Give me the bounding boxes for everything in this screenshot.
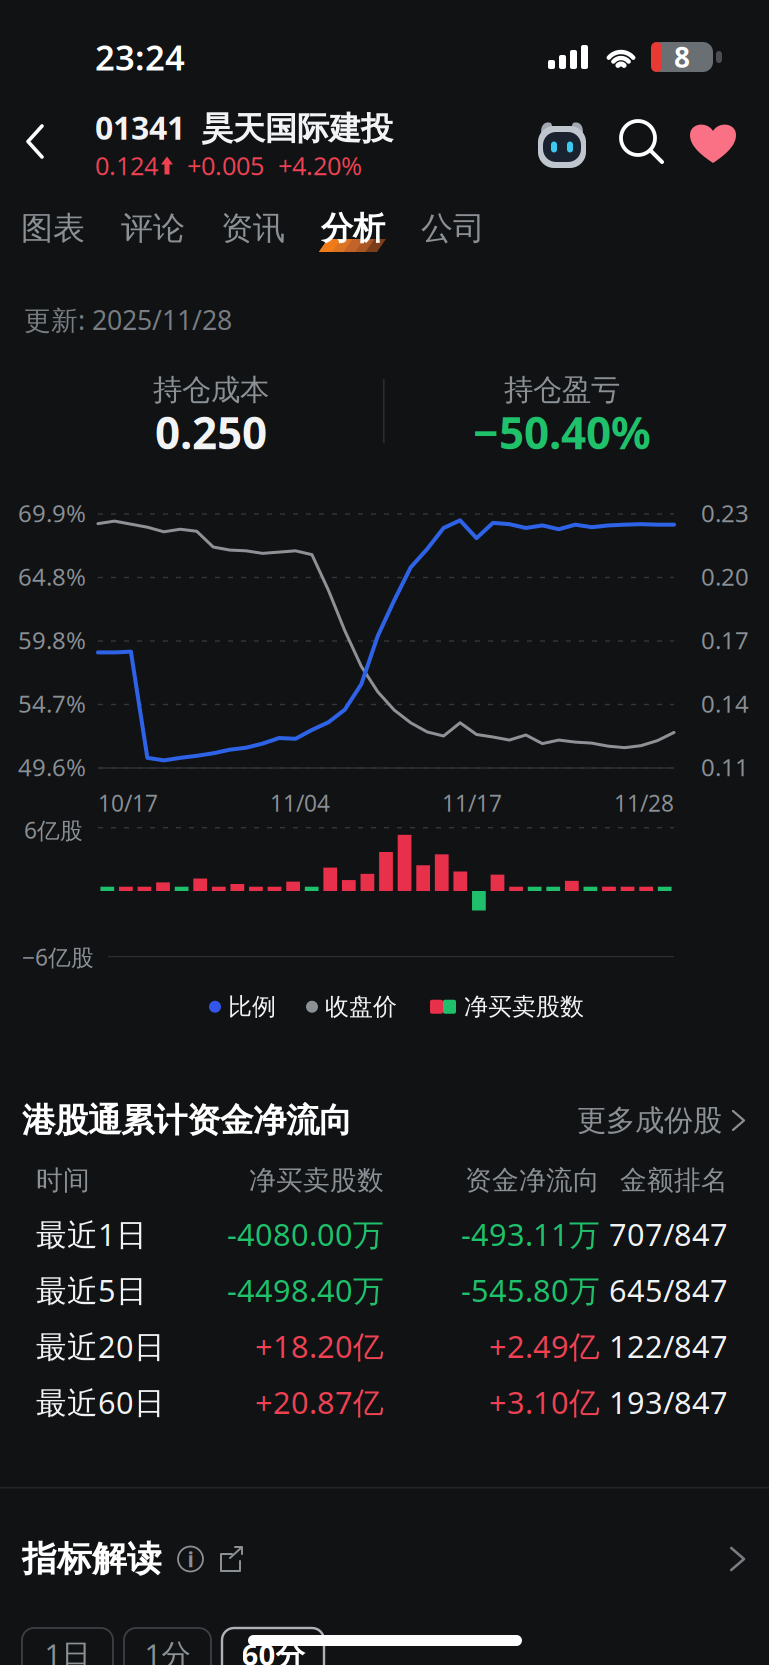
button[interactable]: 60分 [222, 1628, 324, 1665]
button[interactable]: AI assistant [535, 118, 589, 168]
staticText: 49.6% [18, 751, 86, 783]
staticText: 最近60日 [36, 1382, 165, 1422]
button[interactable]: 分析 [301, 204, 401, 256]
staticText: 64.8% [18, 560, 86, 592]
button[interactable]: Back [11, 112, 60, 171]
button[interactable]: 1日 [22, 1628, 113, 1665]
staticText: 指标解读 [22, 1538, 162, 1580]
staticText: -4080.00万 [227, 1214, 384, 1254]
button[interactable]: 更多成份股 [577, 1102, 747, 1138]
button[interactable]: 图表 [1, 204, 101, 256]
staticText: −6亿股 [22, 942, 94, 972]
staticText: 0.20 [701, 560, 749, 592]
staticText: i [187, 1545, 193, 1573]
staticText: 净买卖股数 [464, 992, 584, 1021]
staticText: +20.87亿 [255, 1382, 384, 1422]
staticText: 资讯 [221, 209, 285, 248]
staticText: 时间 [36, 1164, 90, 1197]
staticText: 0.250 [155, 403, 267, 461]
staticText: 收盘价 [325, 992, 397, 1021]
button[interactable]: Favourite [689, 120, 737, 164]
staticText: -545.80万 [461, 1270, 600, 1310]
staticText: 最近1日 [36, 1214, 147, 1254]
staticText: +0.005 +4.20% [173, 149, 362, 182]
staticText: 0.23 [701, 497, 749, 529]
staticText: -493.11万 [461, 1214, 600, 1254]
button[interactable]: Search [621, 121, 664, 164]
staticText: 0.124 [95, 149, 158, 182]
staticText: 23:24 [95, 34, 185, 80]
staticText: 比例 [228, 992, 276, 1021]
staticText: 707/847 [609, 1214, 728, 1254]
staticText: 1日 [44, 1634, 90, 1665]
staticText: −50.40% [473, 403, 651, 461]
staticText: 11/04 [270, 788, 330, 818]
staticText: 69.9% [18, 497, 86, 529]
staticText: +18.20亿 [255, 1326, 384, 1366]
staticText: 11/28 [614, 788, 674, 818]
staticText: 01341 昊天国际建投 [95, 106, 393, 148]
button[interactable]: 资讯 [201, 204, 301, 256]
button[interactable]: 1分 [124, 1628, 211, 1665]
staticText: +3.10亿 [489, 1382, 600, 1422]
staticText: 8 [674, 38, 690, 76]
button[interactable]: 指标解读 [0, 1516, 769, 1602]
staticText: 港股通累计资金净流向 [22, 1100, 352, 1141]
staticText: 59.8% [18, 624, 86, 656]
staticText: 公司 [421, 209, 485, 248]
staticText: +2.49亿 [489, 1326, 600, 1366]
staticText: 金额排名 [620, 1164, 728, 1197]
staticText: 11/17 [442, 788, 502, 818]
staticText: 持仓盈亏 [504, 372, 620, 408]
staticText: 0.11 [701, 751, 749, 783]
staticText: 10/17 [98, 788, 158, 818]
staticText: 122/847 [609, 1326, 728, 1366]
staticText: 645/847 [609, 1270, 728, 1310]
staticText: 分析 [321, 209, 385, 248]
staticText: 1分 [144, 1634, 190, 1665]
button[interactable]: 公司 [401, 204, 501, 256]
staticText: 更多成份股 [577, 1102, 722, 1138]
staticText: 54.7% [18, 687, 86, 719]
staticText: 最近5日 [36, 1270, 147, 1310]
staticText: 资金净流向 [465, 1164, 600, 1197]
staticText: 图表 [21, 209, 85, 248]
staticText: 0.17 [701, 624, 749, 656]
staticText: -4498.40万 [227, 1270, 384, 1310]
button[interactable]: 评论 [101, 204, 201, 256]
staticText: 净买卖股数 [249, 1164, 384, 1197]
staticText: 评论 [121, 209, 185, 248]
staticText: 193/847 [609, 1382, 728, 1422]
staticText: 持仓成本 [153, 372, 269, 408]
staticText: 6亿股 [24, 815, 83, 845]
staticText: 60分 [241, 1634, 304, 1665]
staticText: 最近20日 [36, 1326, 165, 1366]
staticText: 更新: 2025/11/28 [24, 302, 232, 337]
staticText: 0.14 [701, 687, 749, 719]
